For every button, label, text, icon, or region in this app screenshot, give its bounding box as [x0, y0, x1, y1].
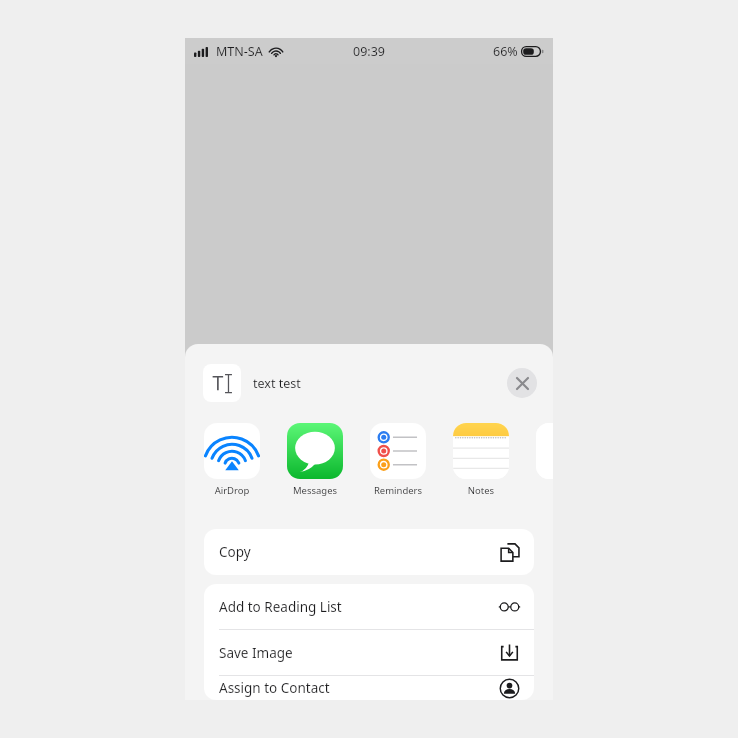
- staticText: 09:39: [353, 43, 385, 60]
- button[interactable]: Preview: [203, 364, 241, 402]
- button[interactable]: AirDrop: [204, 423, 260, 497]
- button[interactable]: Add to Reading List: [204, 584, 534, 629]
- staticText: Add to Reading List: [219, 598, 342, 616]
- staticText: text test: [253, 375, 301, 392]
- staticText: Messages: [287, 484, 343, 497]
- staticText: AirDrop: [204, 484, 260, 497]
- button[interactable]: Notes: [453, 423, 509, 497]
- staticText: Reminders: [370, 484, 426, 497]
- button[interactable]: Copy: [204, 529, 534, 575]
- staticText: Save Image: [219, 644, 293, 662]
- button[interactable]: Ha: [536, 423, 553, 497]
- staticText: Copy: [219, 543, 251, 561]
- staticText: 66%: [493, 43, 518, 60]
- staticText: Assign to Contact: [219, 679, 330, 697]
- button[interactable]: Reminders: [370, 423, 426, 497]
- staticText: Notes: [453, 484, 509, 497]
- button[interactable]: Close: [507, 368, 537, 398]
- button[interactable]: Assign to Contact: [204, 676, 534, 700]
- button[interactable]: Save Image: [204, 630, 534, 675]
- staticText: MTN-SA: [216, 43, 263, 60]
- button[interactable]: Messages: [287, 423, 343, 497]
